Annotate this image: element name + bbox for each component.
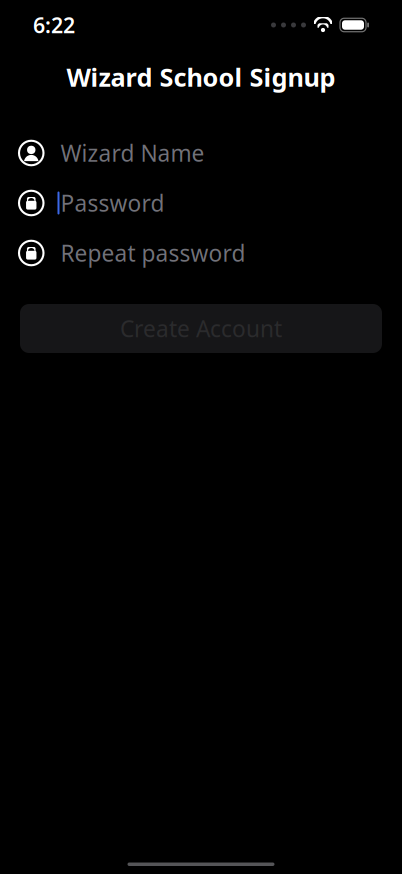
button[interactable]: Repeat password: [0, 228, 402, 278]
staticText: Password: [60, 188, 164, 218]
staticText: Wizard Name: [60, 138, 204, 168]
staticText: Wizard School Signup: [66, 60, 335, 94]
button[interactable]: Create Account: [20, 304, 382, 353]
button[interactable]: Wizard Name: [0, 128, 402, 178]
staticText: 6:22: [33, 11, 75, 39]
button[interactable]: Password: [0, 178, 402, 228]
staticText: Create Account: [120, 313, 282, 343]
staticText: Repeat password: [60, 238, 245, 268]
